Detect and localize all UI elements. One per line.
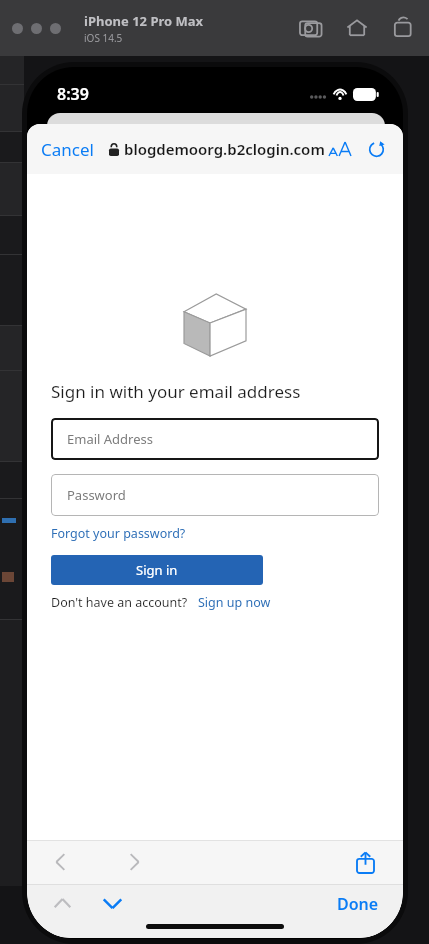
staticText: Sign in with your email address: [51, 380, 301, 403]
button[interactable]: Sign up now: [198, 594, 271, 611]
staticText: Email Address: [67, 430, 153, 448]
button[interactable]: blogdemoorg.b2clogin.com: [109, 139, 325, 159]
button[interactable]: Email Address: [51, 418, 379, 460]
staticText: 8:39: [57, 83, 89, 105]
staticText: Password: [67, 486, 126, 504]
button[interactable]: Text size: [329, 142, 351, 156]
button[interactable]: Reload: [368, 141, 385, 158]
button[interactable]: Forgot your password?: [51, 525, 186, 542]
staticText: blogdemoorg.b2clogin.com: [124, 139, 325, 159]
button[interactable]: Share: [349, 846, 381, 878]
staticText: Done: [337, 893, 379, 915]
button[interactable]: Rotate: [391, 16, 415, 40]
button[interactable]: Window control: [50, 23, 61, 34]
staticText: iPhone 12 Pro Max: [84, 12, 204, 30]
button[interactable]: Screenshot: [299, 16, 323, 40]
staticText: Sign in: [136, 561, 178, 579]
staticText: Sign up now: [198, 594, 271, 611]
button[interactable]: Done: [333, 890, 383, 918]
button[interactable]: Sign in: [51, 555, 263, 585]
button[interactable]: Home: [345, 16, 369, 40]
staticText: iOS 14.5: [84, 31, 123, 45]
button[interactable]: Next field: [97, 888, 127, 918]
button[interactable]: Cancel: [37, 132, 98, 167]
button[interactable]: Password: [51, 474, 379, 516]
button[interactable]: Forward: [119, 847, 149, 877]
staticText: Forgot your password?: [51, 525, 186, 542]
button[interactable]: Window control: [31, 23, 42, 34]
staticText: Don't have an account?: [51, 594, 188, 611]
button[interactable]: Window control: [12, 23, 23, 34]
button[interactable]: Back: [45, 847, 75, 877]
staticText: Cancel: [41, 138, 94, 161]
button[interactable]: Previous field: [47, 888, 77, 918]
